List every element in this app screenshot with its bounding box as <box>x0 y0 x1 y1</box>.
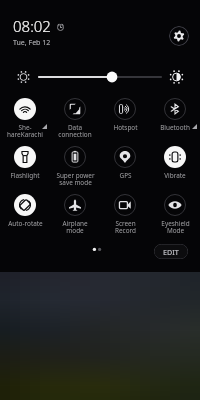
staticText: GPS <box>119 171 132 180</box>
staticText: 08:02 <box>13 16 51 36</box>
button[interactable]: GPS <box>100 144 150 192</box>
button[interactable]: Super power save mode <box>50 144 100 192</box>
staticText: Super power save mode <box>56 171 95 187</box>
button[interactable]: Auto-rotate <box>0 192 50 240</box>
staticText: Auto-rotate <box>8 219 43 228</box>
staticText: Vibrate <box>164 171 186 180</box>
staticText: Eyeshield Mode <box>161 219 190 235</box>
staticText: Screen Record <box>115 219 136 235</box>
staticText: EDIT <box>163 247 179 257</box>
button[interactable]: Vibrate <box>150 144 200 192</box>
button[interactable]: Settings <box>169 26 189 46</box>
button[interactable]: Flashlight <box>0 144 50 192</box>
staticText: Tue, Feb 12 <box>13 38 51 48</box>
button[interactable]: She- hareKarachi <box>0 96 50 144</box>
button[interactable]: Airplane mode <box>50 192 100 240</box>
staticText: Hotspot <box>113 123 138 132</box>
staticText: Flashlight <box>10 171 40 180</box>
button[interactable]: Screen Record <box>100 192 150 240</box>
staticText: She- hareKarachi <box>7 123 43 139</box>
button[interactable]: EDIT <box>154 244 188 259</box>
button[interactable]: Hotspot <box>100 96 150 144</box>
button[interactable]: Bluetooth <box>150 96 200 144</box>
staticText: Airplane mode <box>62 219 88 235</box>
button[interactable]: Data connection <box>50 96 100 144</box>
button[interactable]: Eyeshield Mode <box>150 192 200 240</box>
staticText: Bluetooth <box>160 123 190 132</box>
staticText: Data connection <box>58 123 92 139</box>
